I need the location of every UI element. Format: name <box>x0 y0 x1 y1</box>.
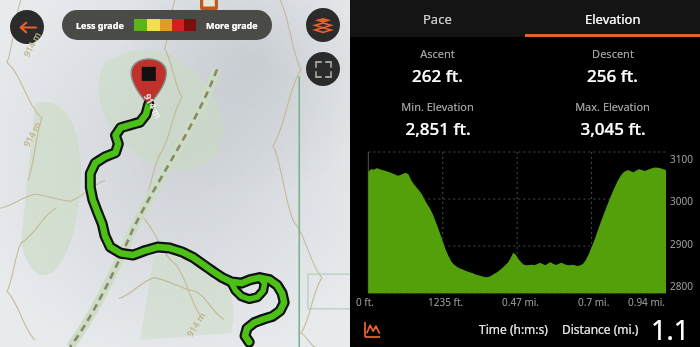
button[interactable]: Map layers <box>306 8 340 42</box>
staticText: 914 m <box>20 119 43 149</box>
staticText: Ascent <box>420 46 455 61</box>
button[interactable]: Pace <box>350 0 525 37</box>
staticText: 0.47 mi. <box>502 295 540 309</box>
staticText: More grade <box>206 19 258 31</box>
staticText: 0 ft. <box>356 295 375 309</box>
staticText: 0.94 mi. <box>628 295 666 309</box>
staticText: 3,045 ft. <box>580 117 646 140</box>
staticText: 2,851 ft. <box>405 117 471 140</box>
staticText: Min. Elevation <box>401 99 474 114</box>
staticText: Max. Elevation <box>575 99 650 114</box>
staticText: Distance (mi.) <box>562 321 639 337</box>
staticText: 3000 <box>670 194 693 208</box>
staticText: 3100 <box>670 152 693 166</box>
staticText: Descent <box>592 46 634 61</box>
button[interactable]: Back <box>10 10 44 44</box>
staticText: 2900 <box>670 237 693 251</box>
staticText: Elevation <box>585 10 641 28</box>
staticText: 1.1 <box>651 311 690 347</box>
staticText: 1235 ft. <box>428 295 464 309</box>
staticText: 262 ft. <box>412 64 463 87</box>
staticText: Time (h:m:s) <box>479 321 548 337</box>
staticText: 256 ft. <box>587 64 638 87</box>
button[interactable]: Chart <box>360 317 384 341</box>
staticText: Less grade <box>76 19 124 31</box>
staticText: 914 m <box>183 309 208 339</box>
staticText: 2800 <box>670 279 693 293</box>
button[interactable]: Less grade <box>62 10 272 40</box>
staticText: 914 m <box>142 91 165 121</box>
staticText: 0.7 mi. <box>578 295 610 309</box>
staticText: 914 m <box>20 29 43 59</box>
button[interactable]: Elevation <box>525 0 700 37</box>
button[interactable]: Fullscreen <box>306 52 340 86</box>
staticText: Pace <box>423 10 452 28</box>
